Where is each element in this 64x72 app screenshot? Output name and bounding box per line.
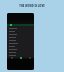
button[interactable] <box>7 36 34 39</box>
staticText: THE WORD IS LOVE <box>0 4 64 8</box>
button[interactable] <box>7 30 34 33</box>
button[interactable]: Library <box>25 57 34 59</box>
button[interactable] <box>7 54 34 57</box>
button[interactable] <box>7 51 34 54</box>
button[interactable] <box>7 33 34 36</box>
button[interactable] <box>7 48 34 51</box>
button[interactable] <box>7 45 34 48</box>
button[interactable] <box>7 42 34 45</box>
button[interactable] <box>7 39 34 42</box>
button[interactable] <box>7 27 34 30</box>
button[interactable]: Home <box>7 57 16 59</box>
button[interactable]: Play <box>16 57 25 59</box>
